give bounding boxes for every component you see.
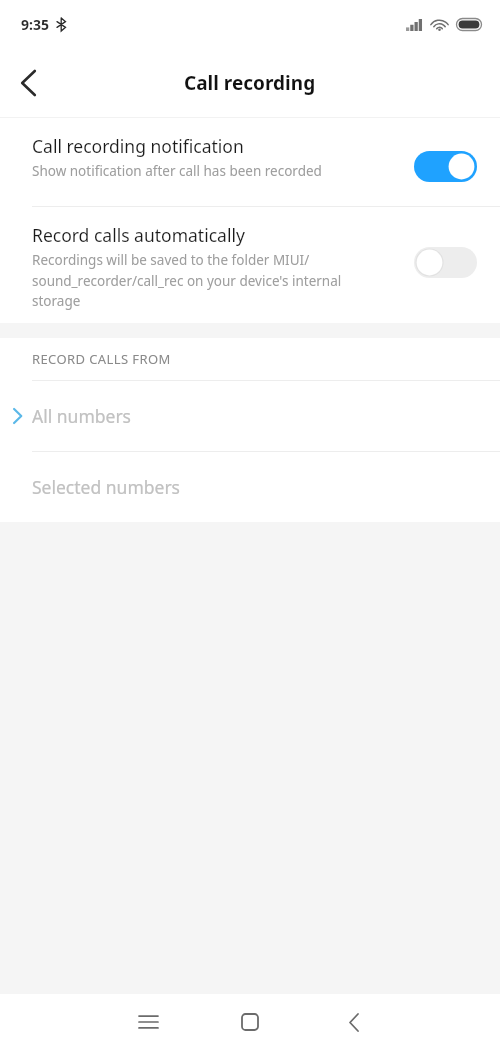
button[interactable]: Back [0,55,56,111]
button[interactable]: Off [414,247,477,278]
staticText: Recordings will be saved to the folder M… [32,251,342,310]
staticText: Call recording [184,70,316,96]
staticText: All numbers [32,404,131,428]
staticText: Call recording notification [32,134,244,158]
button[interactable]: All numbers [0,381,500,451]
button[interactable]: Record calls automatically [0,207,500,323]
staticText: Show notification after call has been re… [32,162,322,180]
staticText: Selected numbers [32,475,180,499]
button[interactable]: Back [326,994,382,1050]
button[interactable]: Selected numbers [0,452,500,522]
button[interactable]: Recents [120,994,176,1050]
staticText: Record calls automatically [32,223,245,247]
button[interactable]: On [414,151,477,182]
staticText: RECORD CALLS FROM [32,350,171,368]
staticText: 9:35 [21,15,49,34]
button[interactable]: Call recording notification [0,118,500,206]
button[interactable]: Home [222,994,278,1050]
